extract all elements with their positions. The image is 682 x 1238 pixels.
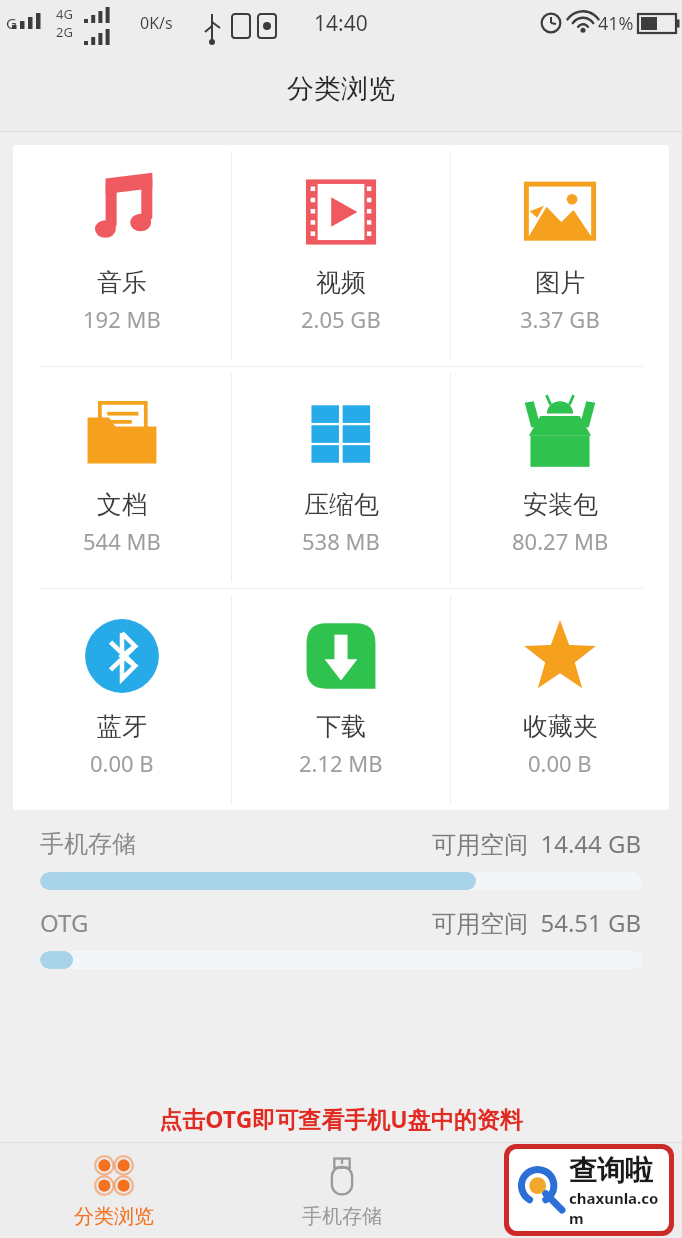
button[interactable]: OTG [455, 1142, 682, 1238]
staticText: 视频 [316, 267, 366, 298]
staticText: 蓝牙 [97, 711, 147, 742]
staticText: 0K/s [140, 12, 173, 34]
staticText: 下载 [316, 711, 366, 742]
staticText: 可用空间 14.44 GB [432, 827, 642, 860]
button[interactable]: 分类浏览 [0, 1142, 228, 1238]
button[interactable]: 蓝牙 [13, 589, 231, 810]
staticText: 2G [56, 23, 73, 41]
staticText: 音乐 [97, 267, 147, 298]
staticText: 安装包 [523, 489, 598, 520]
button[interactable]: 收藏夹 [451, 589, 669, 810]
button[interactable]: 视频 [232, 145, 450, 366]
button[interactable]: 文档 [13, 367, 231, 588]
staticText: chaxunla.com [569, 1188, 669, 1228]
staticText: 2.12 MB [299, 748, 383, 778]
staticText: 分类浏览 [287, 72, 395, 106]
staticText: 文档 [97, 489, 147, 520]
staticText: 可用空间 54.51 GB [432, 906, 642, 939]
staticText: 点击OTG即可查看手机U盘中的资料 [0, 1103, 682, 1134]
staticText: OTG [40, 906, 89, 939]
button[interactable]: 图片 [451, 145, 669, 366]
staticText: 手机存储 [302, 1204, 382, 1229]
staticText: 压缩包 [304, 489, 379, 520]
staticText: 41% [598, 11, 634, 36]
staticText: 4G [56, 5, 73, 23]
staticText: 544 MB [83, 526, 161, 556]
staticText: 80.27 MB [512, 526, 609, 556]
staticText: 538 MB [302, 526, 380, 556]
staticText: 分类浏览 [74, 1204, 154, 1229]
staticText: 192 MB [83, 304, 161, 334]
button[interactable]: OTG [40, 906, 642, 969]
button[interactable]: 手机存储 [40, 827, 642, 890]
staticText: G [6, 13, 17, 33]
staticText: 手机存储 [40, 829, 136, 859]
staticText: 图片 [535, 267, 585, 298]
button[interactable]: 手机存储 [228, 1142, 455, 1238]
button[interactable]: 压缩包 [232, 367, 450, 588]
staticText: 2.05 GB [301, 304, 381, 334]
button[interactable]: 音乐 [13, 145, 231, 366]
staticText: 查询啦 [569, 1153, 653, 1188]
button[interactable]: 下载 [232, 589, 450, 810]
staticText: 收藏夹 [523, 711, 598, 742]
staticText: 14:40 [314, 9, 368, 38]
staticText: 0.00 B [90, 748, 154, 778]
staticText: OTG [548, 1204, 589, 1231]
staticText: 3.37 GB [520, 304, 600, 334]
staticText: 0.00 B [528, 748, 592, 778]
button[interactable]: 安装包 [451, 367, 669, 588]
